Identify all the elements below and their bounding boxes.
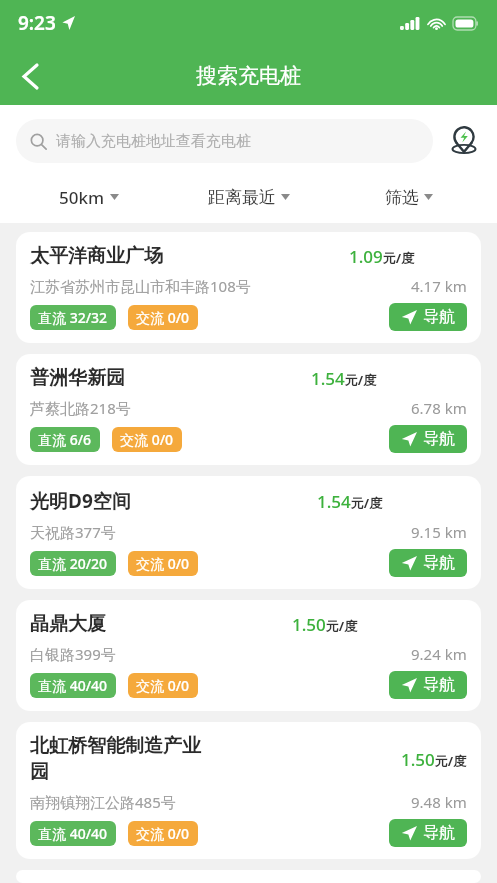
staticText: 直流 40/40	[38, 676, 108, 695]
staticText: 9.48 km	[411, 792, 467, 812]
button[interactable]: 距离最近	[169, 171, 329, 223]
staticText: 9.24 km	[411, 644, 467, 664]
staticText: 筛选	[385, 187, 419, 208]
staticText: 1.54元/度	[317, 490, 383, 513]
staticText: 1.09元/度	[349, 245, 415, 268]
staticText: 交流 0/0	[120, 430, 174, 449]
button[interactable]: 导航	[389, 549, 467, 577]
staticText: 50km	[59, 186, 105, 209]
button[interactable]: Back	[4, 50, 56, 102]
button[interactable]: 直流 6/6	[30, 427, 100, 452]
staticText: 4.17 km	[411, 276, 467, 296]
staticText: 直流 6/6	[38, 430, 92, 449]
button[interactable]: 直流 40/40	[30, 821, 116, 846]
staticText: 江苏省苏州市昆山市和丰路108号	[30, 276, 251, 296]
staticText: 导航	[423, 553, 455, 573]
button[interactable]: 直流 20/20	[30, 551, 116, 576]
staticText: 请输入充电桩地址查看充电桩	[56, 132, 251, 151]
button[interactable]: 北虹桥智能制造产业园	[16, 722, 481, 859]
staticText: 晶鼎大厦	[30, 612, 106, 636]
staticText: 6.78 km	[411, 398, 467, 418]
button[interactable]: 50km	[8, 171, 169, 223]
staticText: 直流 20/20	[38, 554, 108, 573]
staticText: 北虹桥智能制造产业园	[30, 734, 215, 784]
staticText: 芦蔡北路218号	[30, 398, 131, 418]
staticText: 导航	[423, 675, 455, 695]
staticText: 直流 40/40	[38, 824, 108, 843]
staticText: 太平洋商业广场	[30, 244, 163, 268]
staticText: 交流 0/0	[136, 308, 190, 327]
staticText: 搜索充电桩	[196, 63, 301, 89]
button[interactable]: 交流 0/0	[128, 673, 198, 698]
staticText: 南翔镇翔江公路485号	[30, 792, 176, 812]
button[interactable]: 直流 40/40	[30, 673, 116, 698]
staticText: 天祝路377号	[30, 522, 116, 542]
staticText: 导航	[423, 823, 455, 843]
button[interactable]: 直流 32/32	[30, 305, 116, 330]
staticText: 9:23	[18, 10, 56, 36]
button[interactable]: 晶鼎大厦	[16, 600, 481, 711]
staticText: 1.50元/度	[401, 748, 467, 771]
staticText: 1.54元/度	[311, 367, 377, 390]
staticText: 距离最近	[208, 187, 276, 208]
staticText: 1.50元/度	[292, 613, 358, 636]
button[interactable]: 交流 0/0	[128, 821, 198, 846]
button[interactable]: 附近充电桩	[443, 120, 485, 162]
staticText: 交流 0/0	[136, 676, 190, 695]
button[interactable]: 导航	[389, 671, 467, 699]
staticText: 直流 32/32	[38, 308, 108, 327]
staticText: 导航	[423, 429, 455, 449]
button[interactable]: 导航	[389, 303, 467, 331]
button[interactable]: 导航	[389, 425, 467, 453]
staticText: 白银路399号	[30, 644, 116, 664]
staticText: 导航	[423, 307, 455, 327]
button[interactable]: 交流 0/0	[128, 551, 198, 576]
button[interactable]: 导航	[389, 819, 467, 847]
button[interactable]: 交流 0/0	[128, 305, 198, 330]
staticText: 交流 0/0	[136, 824, 190, 843]
button[interactable]: 筛选	[329, 171, 489, 223]
staticText: 光明D9空间	[30, 488, 131, 514]
staticText: 交流 0/0	[136, 554, 190, 573]
button[interactable]: 太平洋商业广场	[16, 232, 481, 343]
button[interactable]: 普洲华新园	[16, 354, 481, 465]
button[interactable]: 交流 0/0	[112, 427, 182, 452]
staticText: 普洲华新园	[30, 366, 125, 390]
button[interactable]: 光明D9空间	[16, 476, 481, 589]
staticText: 9.15 km	[411, 522, 467, 542]
button[interactable]: 请输入充电桩地址查看充电桩	[16, 119, 433, 163]
